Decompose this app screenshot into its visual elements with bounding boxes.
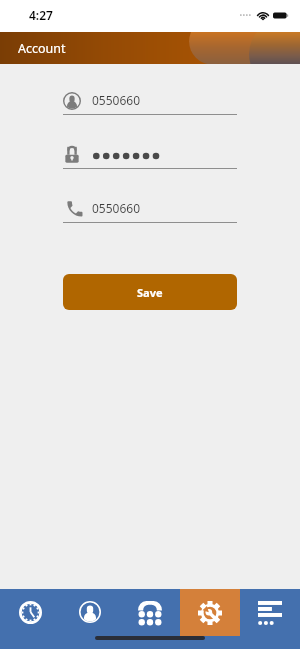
staticText: 0550660 [92,200,141,216]
button[interactable]: History [0,589,60,636]
button[interactable]: Save [63,274,237,310]
button[interactable]: Settings [180,589,240,636]
staticText: Save [137,285,163,300]
button[interactable]: Profile [60,589,120,636]
button[interactable]: More [240,589,300,636]
staticText: Account [18,40,66,57]
button[interactable]: Dialer [120,589,180,636]
staticText: 4:27 [29,7,53,23]
staticText: 0550660 [92,92,141,108]
